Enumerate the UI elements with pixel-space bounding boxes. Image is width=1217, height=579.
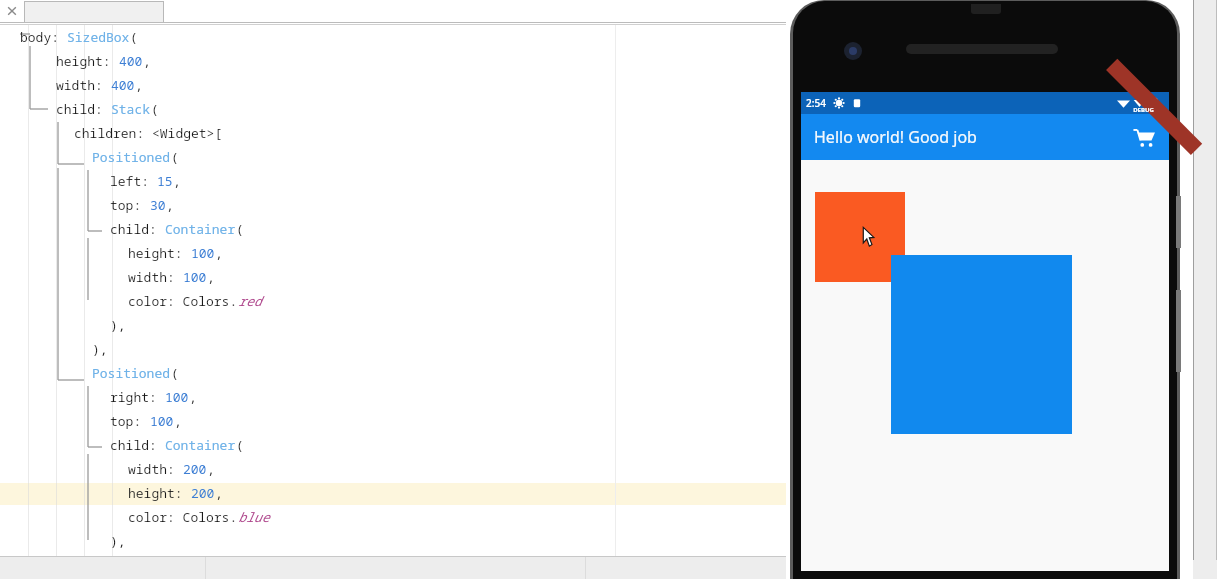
staticText: height: <box>128 244 191 262</box>
staticText: child: <box>56 100 111 118</box>
staticText: width: <box>128 460 183 478</box>
staticText: Positioned <box>92 364 171 382</box>
staticText: ), <box>110 316 126 334</box>
staticText: Container <box>165 220 236 238</box>
staticText: Positioned <box>92 148 171 166</box>
staticText: ( <box>151 100 159 118</box>
staticText: 2:54 <box>806 96 826 110</box>
staticText: red <box>238 292 262 310</box>
staticText: Stack <box>111 100 151 118</box>
staticText: top: <box>110 196 150 214</box>
staticText: , <box>207 268 215 286</box>
staticText: , <box>166 196 174 214</box>
button[interactable] <box>815 192 905 282</box>
staticText: 400 <box>119 52 143 70</box>
staticText: right: <box>110 388 165 406</box>
button[interactable] <box>24 1 164 22</box>
staticText: top: <box>110 412 150 430</box>
staticText: color: Colors. <box>128 292 238 310</box>
staticText: , <box>215 484 223 502</box>
staticText: color: Colors. <box>128 508 238 526</box>
staticText: , <box>173 172 181 190</box>
staticText: SizedBox <box>67 28 130 46</box>
staticText: , <box>135 76 143 94</box>
staticText: ), <box>92 340 108 358</box>
staticText: width: <box>128 268 183 286</box>
staticText: blue <box>238 508 270 526</box>
staticText: , <box>207 460 215 478</box>
staticText: 400 <box>111 76 135 94</box>
staticText: 100 <box>165 388 189 406</box>
staticText: , <box>143 52 151 70</box>
staticText: Hello world! Good job <box>814 126 977 148</box>
staticText: 200 <box>183 460 207 478</box>
staticText: 100 <box>150 412 174 430</box>
staticText: height: <box>56 52 119 70</box>
staticText: ), <box>110 532 126 550</box>
staticText: width: <box>56 76 111 94</box>
staticText: left: <box>110 172 157 190</box>
staticText: height: <box>128 484 191 502</box>
staticText: DEBUG <box>1133 106 1154 114</box>
staticText: ( <box>171 364 179 382</box>
staticText: , <box>215 244 223 262</box>
staticText: Container <box>165 436 236 454</box>
staticText: 100 <box>183 268 207 286</box>
staticText: 200 <box>191 484 215 502</box>
button[interactable]: Close tab <box>6 5 18 17</box>
staticText: ( <box>236 220 244 238</box>
staticText: child: <box>110 220 165 238</box>
staticText: ( <box>130 28 138 46</box>
staticText: child: <box>110 436 165 454</box>
staticText: children: <Widget>[ <box>74 124 223 142</box>
button[interactable]: Shopping cart <box>1121 114 1167 160</box>
staticText: body: <box>20 28 67 46</box>
staticText: 100 <box>191 244 215 262</box>
staticText: , <box>189 388 197 406</box>
staticText: 15 <box>157 172 173 190</box>
staticText: ( <box>171 148 179 166</box>
staticText: 30 <box>150 196 166 214</box>
staticText: ( <box>236 436 244 454</box>
staticText: , <box>174 412 182 430</box>
